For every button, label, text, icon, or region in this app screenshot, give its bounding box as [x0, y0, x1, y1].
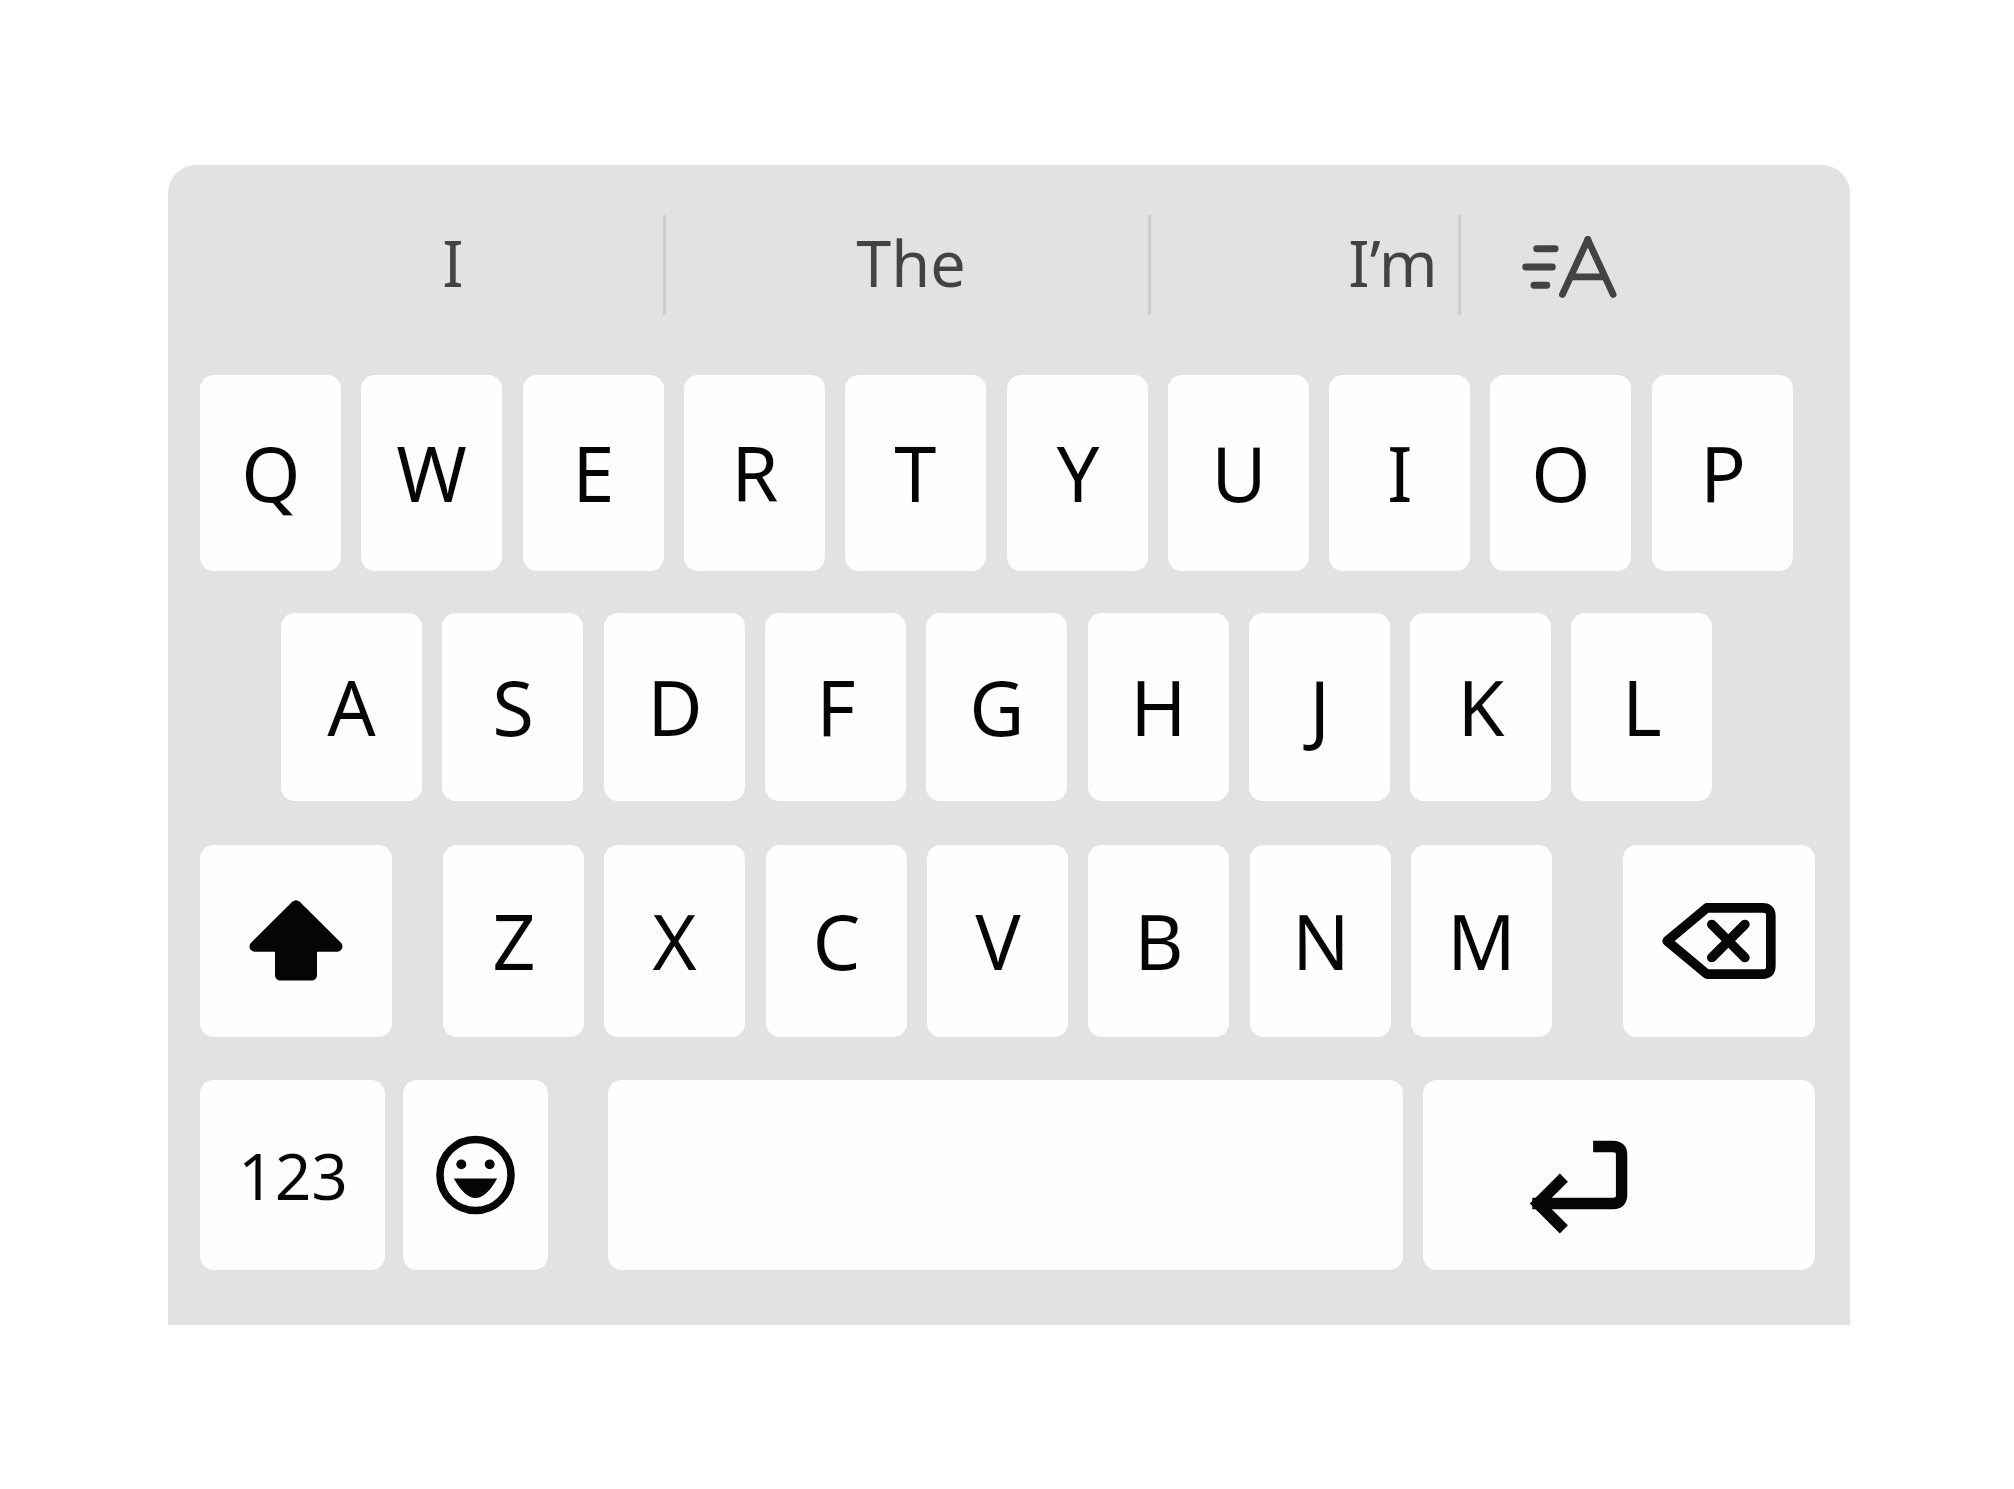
- button[interactable]: P: [1652, 375, 1793, 571]
- button[interactable]: 123: [200, 1080, 385, 1270]
- staticText: I: [1387, 421, 1413, 525]
- staticText: P: [1700, 421, 1746, 525]
- button[interactable]: Text formatting: [1493, 213, 1643, 321]
- button[interactable]: S: [442, 613, 583, 801]
- button[interactable]: A: [281, 613, 422, 801]
- staticText: Z: [492, 889, 536, 993]
- staticText: C: [812, 889, 861, 993]
- button[interactable]: C: [766, 845, 907, 1037]
- button[interactable]: H: [1088, 613, 1229, 801]
- staticText: W: [396, 421, 467, 525]
- button[interactable]: M: [1411, 845, 1552, 1037]
- button[interactable]: Z: [443, 845, 584, 1037]
- staticText: O: [1531, 421, 1591, 525]
- button[interactable]: B: [1088, 845, 1229, 1037]
- button[interactable]: K: [1410, 613, 1551, 801]
- staticText: F: [816, 655, 856, 759]
- button[interactable]: V: [927, 845, 1068, 1037]
- button[interactable]: The: [673, 207, 1148, 319]
- staticText: The: [856, 220, 966, 306]
- button[interactable]: T: [845, 375, 986, 571]
- staticText: K: [1457, 655, 1505, 759]
- staticText: X: [652, 889, 697, 993]
- staticText: Q: [241, 421, 301, 525]
- staticText: I’m: [1348, 220, 1438, 306]
- button[interactable]: J: [1249, 613, 1390, 801]
- staticText: T: [894, 421, 937, 525]
- staticText: H: [1130, 655, 1187, 759]
- staticText: N: [1292, 889, 1350, 993]
- button[interactable]: E: [523, 375, 664, 571]
- button[interactable]: G: [926, 613, 1067, 801]
- staticText: B: [1134, 889, 1184, 993]
- button[interactable]: I’m: [1158, 207, 1628, 319]
- button[interactable]: Shift: [200, 845, 392, 1037]
- button[interactable]: Emoji: [403, 1080, 548, 1270]
- staticText: I: [442, 220, 464, 306]
- staticText: D: [647, 655, 703, 759]
- button[interactable]: U: [1168, 375, 1309, 571]
- staticText: U: [1211, 421, 1267, 525]
- button[interactable]: F: [765, 613, 906, 801]
- button[interactable]: L: [1571, 613, 1712, 801]
- button[interactable]: I: [1329, 375, 1470, 571]
- button[interactable]: O: [1490, 375, 1631, 571]
- button[interactable]: Enter: [1423, 1080, 1815, 1270]
- staticText: G: [969, 655, 1025, 759]
- staticText: S: [492, 655, 534, 759]
- button[interactable]: R: [684, 375, 825, 571]
- button[interactable]: D: [604, 613, 745, 801]
- button[interactable]: N: [1250, 845, 1391, 1037]
- staticText: E: [572, 421, 615, 525]
- button[interactable]: I: [223, 207, 683, 319]
- staticText: A: [327, 655, 376, 759]
- staticText: Y: [1056, 421, 1100, 525]
- button[interactable]: W: [361, 375, 502, 571]
- button[interactable]: Y: [1007, 375, 1148, 571]
- staticText: V: [975, 889, 1021, 993]
- staticText: 123: [238, 1132, 348, 1219]
- staticText: J: [1309, 655, 1330, 759]
- staticText: M: [1447, 889, 1516, 993]
- button[interactable]: X: [604, 845, 745, 1037]
- staticText: R: [731, 421, 779, 525]
- staticText: L: [1622, 655, 1662, 759]
- button[interactable]: Q: [200, 375, 341, 571]
- button[interactable]: Backspace: [1623, 845, 1815, 1037]
